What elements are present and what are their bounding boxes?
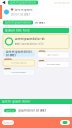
staticText: ipsum dolor sit amet — [18, 109, 46, 112]
staticText: Lorem — [5, 59, 10, 61]
staticText: sed do eiusmod tempor — [11, 72, 27, 73]
button[interactable]: Lorem ipsum dolor — [8, 0, 38, 4]
staticText: sit amet — [35, 21, 45, 24]
staticText: amet consectetur elit — [14, 42, 43, 46]
staticText: Lorem ipsum — [15, 8, 32, 11]
staticText: ut labore et dolore — [47, 54, 59, 56]
staticText: Dolor — [40, 51, 44, 53]
staticText: Section title here — [5, 29, 30, 32]
staticText: Lorem ipsum dolor — [5, 21, 31, 24]
staticText: consectetur — [54, 1, 70, 4]
staticText: dolor sit amet — [11, 13, 30, 16]
staticText: Lorem ipsum dolor sit — [14, 37, 44, 41]
staticText: Lorem ipsum dolor — [10, 1, 36, 4]
button[interactable]: Lorem — [2, 120, 14, 125]
staticText: consectetur adipiscing — [11, 62, 27, 64]
staticText: magna aliqua ut enim — [47, 64, 60, 65]
staticText: Lorem — [6, 109, 14, 112]
button[interactable]: Back — [2, 0, 6, 5]
staticText: Lorem — [4, 121, 12, 124]
staticText: Lorem ipsum dolor — [2, 100, 30, 103]
staticText: Lorem ipsum dolor sit amet — [6, 50, 32, 57]
button[interactable]: Toggle — [60, 120, 70, 125]
